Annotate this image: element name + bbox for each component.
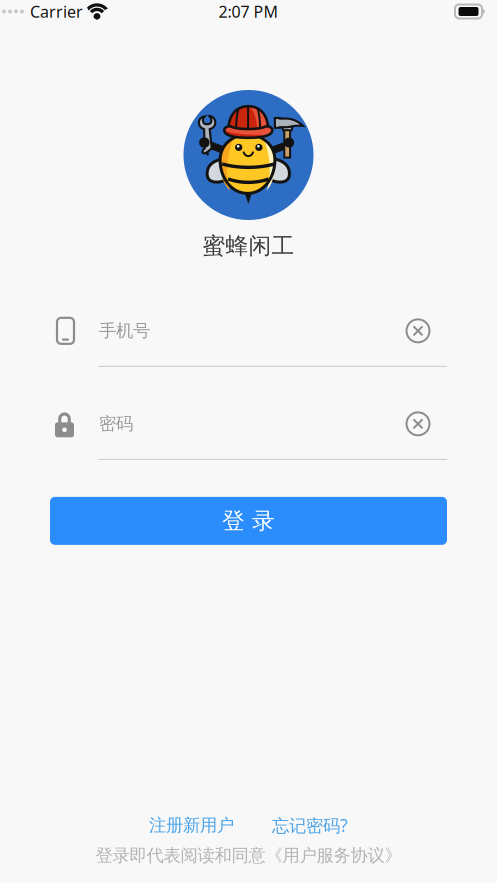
staticText: 手机号: [99, 320, 150, 341]
staticText: 登录即代表阅读和同意《用户服务协议》: [95, 845, 401, 866]
staticText: 登 录: [222, 507, 275, 535]
button[interactable]: 忘记密码?: [272, 814, 348, 837]
staticText: 密码: [99, 413, 133, 434]
button[interactable]: 注册新用户: [149, 815, 234, 836]
staticText: Carrier: [30, 1, 83, 22]
button[interactable]: Clear: [401, 314, 435, 348]
staticText: 注册新用户: [149, 815, 234, 836]
button[interactable]: Clear: [401, 407, 435, 441]
staticText: 2:07 PM: [218, 1, 278, 22]
button[interactable]: 登 录: [50, 497, 447, 545]
staticText: 忘记密码?: [272, 814, 348, 837]
staticText: 蜜蜂闲工: [202, 232, 294, 260]
